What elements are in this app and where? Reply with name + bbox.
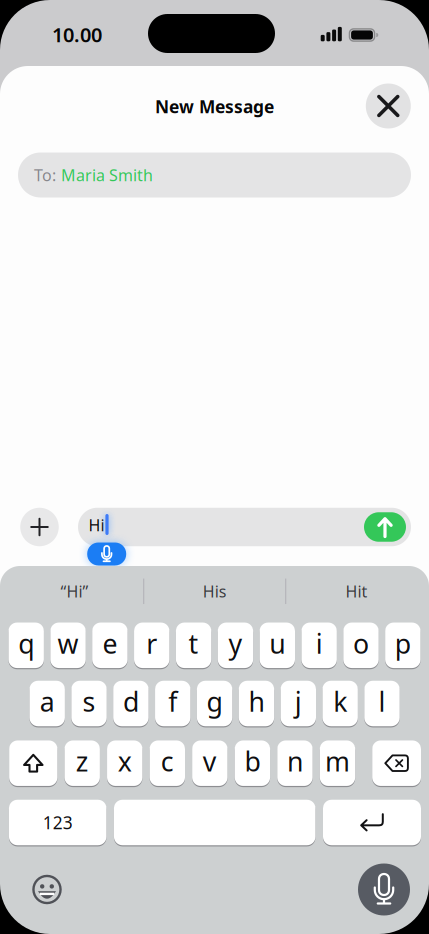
button[interactable]: i <box>301 622 337 669</box>
button[interactable]: n <box>277 740 313 787</box>
button[interactable]: w <box>50 622 86 669</box>
staticText: f <box>168 684 177 719</box>
button[interactable]: To: <box>18 152 411 197</box>
button[interactable]: 123 <box>9 799 106 846</box>
button[interactable]: u <box>260 622 295 669</box>
staticText: r <box>146 626 157 661</box>
button[interactable]: y <box>218 622 253 669</box>
staticText: u <box>269 626 285 661</box>
button[interactable]: z <box>64 740 100 787</box>
staticText: j <box>295 684 302 719</box>
button[interactable]: g <box>197 680 232 727</box>
button[interactable]: l <box>364 680 400 727</box>
staticText: Hi <box>88 514 104 536</box>
button[interactable]: s <box>71 680 107 727</box>
staticText: His <box>203 581 227 602</box>
staticText: p <box>395 626 411 661</box>
button[interactable] <box>358 863 410 915</box>
staticText: n <box>287 743 303 779</box>
button[interactable] <box>9 740 57 787</box>
button[interactable]: b <box>235 740 270 787</box>
staticText: 10.00 <box>52 21 102 48</box>
staticText: b <box>244 743 260 779</box>
button[interactable]: His <box>150 574 280 608</box>
button[interactable]: v <box>192 740 228 787</box>
button[interactable]: a <box>29 680 65 727</box>
button[interactable] <box>323 799 421 846</box>
staticText: m <box>325 743 350 779</box>
button[interactable]: d <box>113 680 149 727</box>
staticText: z <box>76 743 89 779</box>
staticText: Hit <box>345 581 367 602</box>
staticText: Maria Smith <box>61 164 153 186</box>
button[interactable] <box>78 508 411 546</box>
staticText: l <box>378 684 385 719</box>
button[interactable] <box>87 542 126 565</box>
button[interactable]: o <box>343 622 379 669</box>
staticText: c <box>161 743 174 779</box>
staticText: w <box>57 626 78 661</box>
staticText: 123 <box>43 811 73 834</box>
staticText: q <box>18 626 34 661</box>
button[interactable] <box>364 512 406 542</box>
button[interactable]: h <box>239 680 274 727</box>
button[interactable]: q <box>8 622 44 669</box>
staticText: h <box>248 684 264 719</box>
staticText: i <box>316 626 323 661</box>
button[interactable] <box>372 740 421 787</box>
button[interactable] <box>366 83 411 128</box>
staticText: k <box>333 684 347 719</box>
staticText: x <box>118 743 132 779</box>
button[interactable]: “Hi” <box>9 574 139 608</box>
staticText: s <box>83 684 96 719</box>
button[interactable]: c <box>150 740 185 787</box>
button[interactable]: t <box>176 622 211 669</box>
button[interactable]: k <box>322 680 358 727</box>
button[interactable]: x <box>107 740 142 787</box>
staticText: e <box>102 626 117 661</box>
staticText: To: <box>34 164 56 186</box>
button[interactable]: Hit <box>291 574 421 608</box>
button[interactable] <box>20 508 59 546</box>
staticText: New Message <box>155 95 274 118</box>
staticText: d <box>123 684 139 719</box>
button[interactable]: r <box>134 622 169 669</box>
staticText: o <box>353 626 369 661</box>
staticText: a <box>40 684 55 719</box>
staticText: “Hi” <box>60 581 88 602</box>
button[interactable]: e <box>92 622 128 669</box>
button[interactable]: p <box>385 622 421 669</box>
staticText: v <box>203 743 217 779</box>
staticText: t <box>189 626 199 661</box>
staticText: g <box>207 684 223 719</box>
button[interactable] <box>32 874 62 904</box>
button[interactable]: j <box>281 680 316 727</box>
staticText: y <box>228 626 242 661</box>
button[interactable]: m <box>320 740 355 787</box>
button[interactable] <box>114 799 315 846</box>
button[interactable]: f <box>155 680 190 727</box>
